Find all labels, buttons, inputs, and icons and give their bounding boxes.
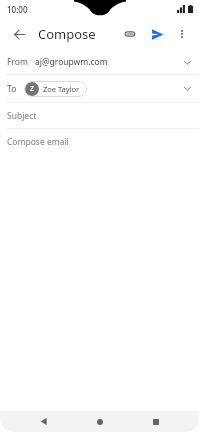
- button[interactable]: Subject: [0, 103, 199, 128]
- button[interactable]: Recent apps: [143, 411, 169, 432]
- button[interactable]: Attach file: [118, 22, 142, 46]
- staticText: From: [7, 56, 28, 68]
- button[interactable]: To: [0, 75, 199, 102]
- button[interactable]: From: [0, 50, 199, 74]
- staticText: Zoe Taylor: [43, 84, 80, 94]
- staticText: Subject: [7, 110, 37, 122]
- staticText: To: [7, 83, 17, 95]
- button[interactable]: Home: [87, 411, 113, 432]
- button[interactable]: Compose email: [0, 129, 199, 154]
- button[interactable]: Back: [6, 21, 32, 47]
- button[interactable]: Send: [145, 22, 169, 46]
- staticText: 10:00: [7, 4, 28, 15]
- staticText: Compose email: [7, 136, 69, 148]
- button[interactable]: More options: [171, 23, 193, 45]
- button[interactable]: Z: [24, 81, 87, 97]
- staticText: Z: [30, 84, 35, 94]
- staticText: Compose: [38, 25, 96, 43]
- staticText: aj@groupwm.com: [35, 56, 108, 68]
- button[interactable]: Back: [30, 411, 56, 432]
